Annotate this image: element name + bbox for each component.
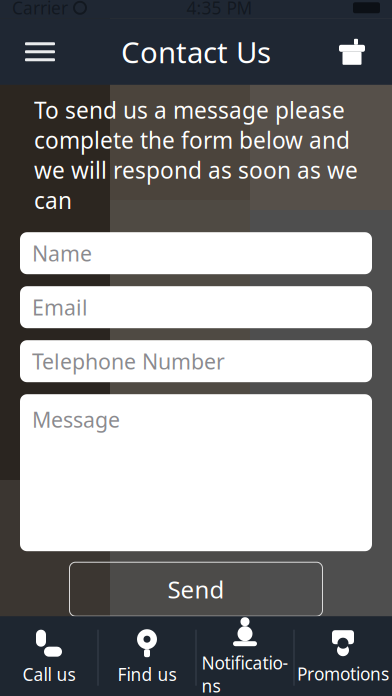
- staticText: 4:35 PM: [186, 0, 252, 19]
- staticText: Call us: [22, 663, 75, 686]
- staticText: Find us: [117, 663, 176, 686]
- button[interactable]: Email: [20, 286, 372, 328]
- staticText: Contact Us: [121, 32, 271, 71]
- staticText: Message: [32, 405, 120, 433]
- button[interactable]: Menu: [10, 30, 70, 74]
- button[interactable]: Name: [20, 232, 372, 274]
- staticText: Name: [32, 239, 92, 267]
- button[interactable]: Send: [69, 562, 322, 616]
- button[interactable]: Call us: [0, 616, 97, 696]
- button[interactable]: Message: [20, 394, 372, 551]
- button[interactable]: Telephone Number: [20, 340, 372, 382]
- button[interactable]: Home: [322, 30, 382, 74]
- button[interactable]: Promotions: [294, 616, 391, 696]
- button[interactable]: Notifications: [196, 616, 293, 696]
- staticText: To send us a message please complete the…: [34, 95, 358, 215]
- staticText: Promotions: [297, 662, 389, 685]
- staticText: Notifications: [201, 651, 288, 696]
- staticText: Carrier: [12, 0, 68, 19]
- staticText: Email: [32, 293, 88, 321]
- button[interactable]: Find us: [98, 616, 195, 696]
- staticText: Send: [167, 573, 224, 605]
- staticText: Telephone Number: [32, 347, 225, 375]
